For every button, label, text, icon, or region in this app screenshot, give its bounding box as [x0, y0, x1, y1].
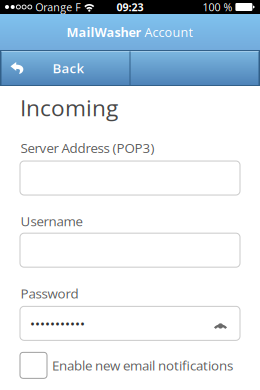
- staticText: Incoming: [20, 92, 118, 123]
- staticText: MailWasher: [66, 23, 141, 41]
- staticText: •••••••••••: [30, 314, 85, 332]
- staticText: Orange F: [35, 0, 81, 14]
- staticText: Server Address (POP3): [20, 139, 154, 157]
- staticText: 09:23: [116, 0, 143, 14]
- button[interactable]: Forward: [130, 51, 258, 85]
- button[interactable]: Show password: [212, 310, 240, 336]
- staticText: Back: [52, 59, 84, 77]
- staticText: Account: [141, 23, 193, 41]
- staticText: Username: [20, 212, 82, 230]
- staticText: Password: [20, 284, 78, 302]
- staticText: 100 %: [202, 0, 232, 14]
- button[interactable]: Enable new email notifications: [0, 352, 260, 378]
- button[interactable]: Back: [1, 51, 129, 85]
- staticText: Enable new email notifications: [52, 356, 233, 374]
